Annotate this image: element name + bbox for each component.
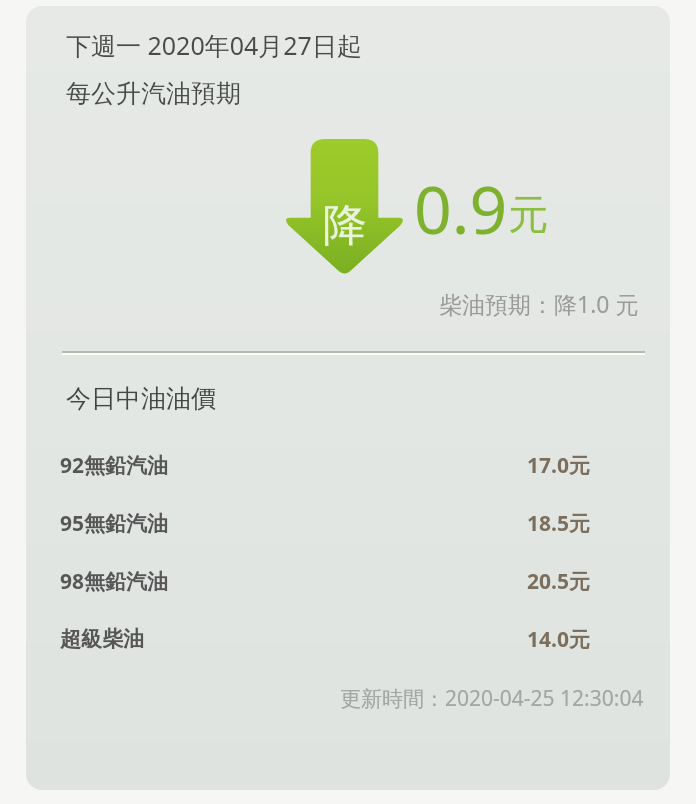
staticText: 超級柴油 (60, 626, 144, 652)
staticText: 降 (323, 198, 367, 253)
staticText: 18.5元 (527, 509, 590, 538)
button[interactable]: 95無鉛汽油 (26, 494, 670, 552)
staticText: 14.0元 (527, 625, 590, 654)
button[interactable]: 超級柴油 (26, 610, 670, 668)
staticText: 下週一 2020年04月27日起 (66, 28, 362, 62)
button[interactable]: 98無鉛汽油 (26, 552, 670, 610)
staticText: 17.0元 (527, 451, 590, 480)
button[interactable]: 92無鉛汽油 (26, 436, 670, 494)
staticText: 每公升汽油預期 (66, 78, 241, 109)
staticText: 柴油預期：降1.0 元 (439, 288, 639, 319)
staticText: 元 (508, 189, 548, 239)
staticText: 今日中油油價 (66, 383, 216, 414)
staticText: 20.5元 (527, 567, 590, 596)
staticText: 更新時間：2020-04-25 12:30:04 (340, 684, 644, 713)
staticText: 92無鉛汽油 (60, 451, 169, 480)
staticText: 98無鉛汽油 (60, 567, 169, 596)
staticText: 0.9 (414, 163, 508, 253)
other: 油價下降 (283, 139, 406, 276)
staticText: 95無鉛汽油 (60, 509, 169, 538)
